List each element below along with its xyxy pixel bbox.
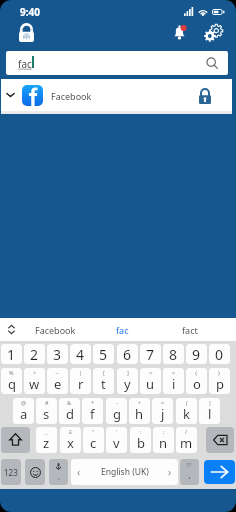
staticText: b (137, 434, 145, 452)
staticText: English (UK) (101, 466, 149, 478)
staticText: = (161, 399, 165, 406)
button[interactable]: Voice input (49, 459, 68, 485)
button[interactable]: Emoji (25, 459, 45, 485)
button[interactable]: = (152, 398, 173, 424)
button[interactable]: ] (117, 368, 138, 394)
staticText: c (90, 434, 97, 452)
staticText: l (208, 405, 212, 423)
button[interactable]: } (209, 368, 230, 394)
staticText: ^ (33, 369, 37, 376)
staticText: f (90, 405, 95, 423)
button[interactable]: @ (13, 398, 34, 424)
button[interactable]: 3 (47, 344, 68, 364)
staticText: d (66, 405, 74, 423)
button[interactable]: | (70, 368, 91, 394)
button[interactable]: ( (176, 398, 197, 424)
button[interactable]: 1 (1, 344, 22, 364)
staticText: v (113, 434, 120, 452)
staticText: h (135, 405, 144, 423)
staticText: Facebook (51, 90, 92, 102)
button[interactable]: Notifications (174, 25, 187, 41)
button[interactable]: { (186, 368, 207, 394)
staticText: m (180, 434, 193, 452)
button[interactable]: 9 (186, 344, 207, 364)
staticText: p (216, 375, 224, 393)
staticText: 2 (30, 345, 39, 364)
button[interactable]: Facebook (22, 318, 89, 341)
staticText: n (159, 434, 168, 452)
button[interactable]: Settings (203, 22, 224, 43)
staticText: , (58, 472, 60, 482)
staticText: 3 (53, 345, 62, 364)
staticText: z (43, 434, 50, 452)
button[interactable]: !? (180, 459, 199, 485)
button[interactable]: < (140, 368, 161, 394)
button[interactable]: fact (156, 318, 223, 341)
button[interactable]: ‹ (71, 459, 178, 485)
button[interactable]: Expand suggestions (0, 318, 22, 341)
button[interactable]: fac (89, 318, 156, 341)
staticText: < (149, 369, 153, 376)
staticText: a (20, 405, 28, 423)
staticText: @ (21, 399, 26, 406)
button[interactable]: & (59, 398, 80, 424)
button[interactable]: 4 (70, 344, 91, 364)
button[interactable]: [ (93, 368, 114, 394)
button[interactable]: : (130, 427, 151, 453)
button[interactable]: " (83, 427, 104, 453)
button[interactable]: - (106, 398, 127, 424)
button[interactable]: ; (153, 427, 174, 453)
staticText: / (185, 428, 188, 435)
button[interactable]: _ (36, 427, 57, 453)
button[interactable]: % (1, 368, 22, 394)
staticText: > (172, 369, 176, 376)
staticText: + (138, 399, 142, 406)
staticText: x (67, 434, 74, 452)
button[interactable]: 5 (93, 344, 114, 364)
staticText: ; (163, 428, 165, 435)
staticText: } (218, 369, 221, 376)
button[interactable]: * (82, 398, 103, 424)
button[interactable]: Shift (1, 427, 30, 453)
button[interactable]: + (129, 398, 150, 424)
staticText: u (146, 375, 155, 393)
staticText: k (183, 405, 190, 423)
staticText: ) (209, 399, 211, 406)
staticText: 9 (192, 345, 201, 364)
button[interactable]: Unlock with fingerprint (19, 23, 34, 42)
staticText: q (8, 375, 16, 393)
staticText: ] (127, 369, 129, 376)
button[interactable]: 7 (140, 344, 161, 364)
staticText: ~ (56, 369, 60, 376)
button[interactable]: # (36, 398, 57, 424)
staticText: j (161, 405, 165, 423)
staticText: ‹ (77, 465, 81, 479)
button[interactable]: ^ (24, 368, 45, 394)
button[interactable]: 6 (117, 344, 138, 364)
button[interactable]: 0 (209, 344, 230, 364)
staticText: & (67, 399, 72, 406)
button[interactable]: 2 (24, 344, 45, 364)
staticText: fac (18, 57, 32, 71)
button[interactable]: 123 (1, 459, 21, 485)
staticText: : (140, 428, 142, 435)
staticText: 8 (169, 345, 178, 364)
button[interactable]: £ (60, 427, 81, 453)
staticText: . (188, 468, 191, 482)
staticText: - (116, 399, 118, 406)
button[interactable]: fac (6, 51, 228, 75)
staticText: fact (182, 324, 198, 336)
staticText: 6 (123, 345, 132, 364)
button[interactable]: ~ (47, 368, 68, 394)
button[interactable]: / (176, 427, 197, 453)
button[interactable]: Search (204, 460, 235, 484)
button[interactable]: 8 (163, 344, 184, 364)
staticText: 4 (76, 345, 85, 364)
button[interactable]: Facebook (1, 79, 232, 111)
staticText: £ (69, 428, 73, 435)
button[interactable]: ) (199, 398, 220, 424)
button[interactable]: Backspace (206, 427, 234, 453)
button[interactable]: ' (106, 427, 127, 453)
button[interactable]: > (163, 368, 184, 394)
staticText: ' (116, 428, 118, 435)
